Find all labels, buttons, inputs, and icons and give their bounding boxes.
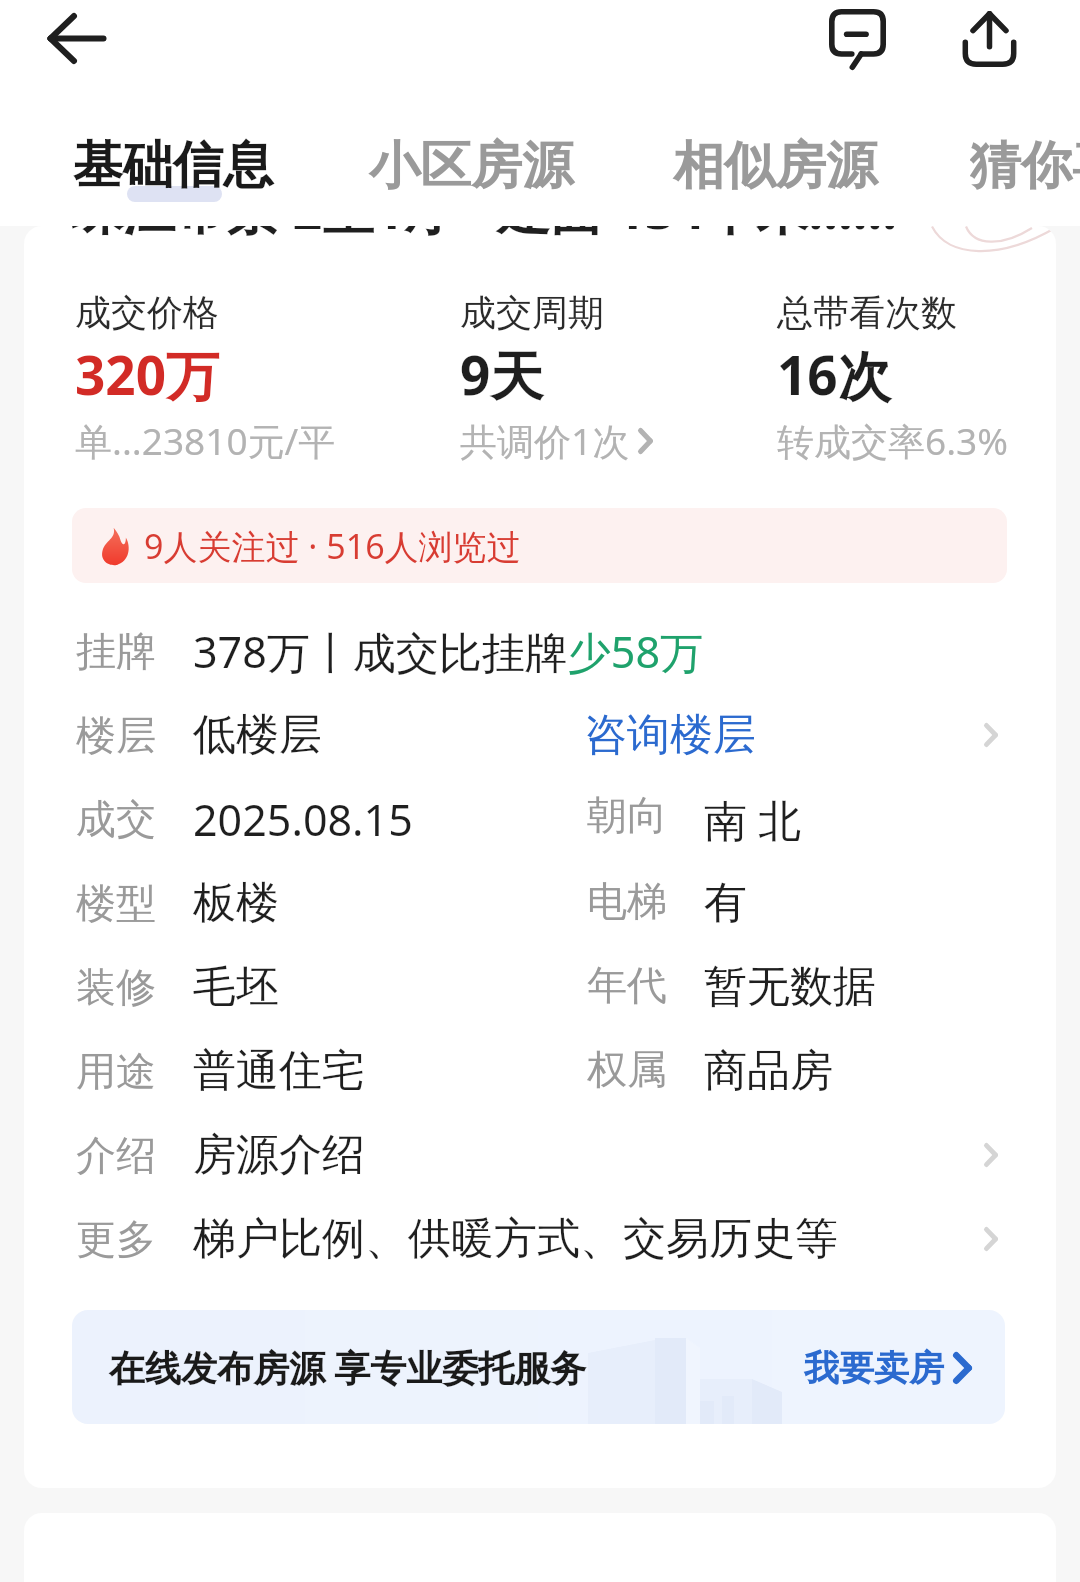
button[interactable]: 猜你喜欢 [970, 134, 1080, 198]
staticText: 用途 [76, 1046, 156, 1096]
staticText: 楼层 [76, 710, 156, 760]
staticText: 年代 [587, 960, 667, 1010]
staticText: 共调价1次 [460, 415, 630, 466]
staticText: 介绍 [76, 1130, 156, 1180]
staticText: 权属 [587, 1044, 667, 1094]
staticText: 小区房源 [369, 134, 573, 198]
staticText: 梯户比例、供暖方式、交易历史等 [193, 1212, 838, 1266]
staticText: 成交价格 [75, 290, 219, 335]
staticText: 南 北 [704, 790, 802, 849]
staticText: 成交周期 [460, 290, 604, 335]
staticText: 楼型 [76, 878, 156, 928]
staticText: 378万丨成交比挂牌少58万 [193, 622, 703, 681]
staticText: 9天 [460, 338, 544, 410]
staticText: 珠江帝景 2室1厅 · 建面 134平米…… [71, 226, 898, 244]
button[interactable]: 小区房源 [369, 134, 573, 198]
staticText: 房源介绍 [193, 1128, 365, 1182]
staticText: 商品房 [704, 1044, 833, 1098]
staticText: 总带看次数 [777, 290, 957, 335]
staticText: 单...23810元/平 [75, 415, 336, 466]
button[interactable]: 在线发布房源 享专业委托服务 [72, 1310, 1005, 1424]
staticText: 低楼层 [193, 708, 322, 762]
staticText: 在线发布房源 享专业委托服务 [109, 1343, 587, 1392]
staticText: 基础信息 [73, 134, 273, 197]
staticText: 暂无数据 [704, 960, 876, 1014]
staticText: 16次 [777, 338, 891, 410]
staticText: 猜你喜欢 [970, 134, 1080, 198]
staticText: 装修 [76, 962, 156, 1012]
staticText: 电梯 [587, 876, 667, 926]
button[interactable]: Share [962, 11, 1017, 67]
staticText: 2025.08.15 [193, 790, 413, 849]
button[interactable]: 相似房源 [673, 134, 877, 198]
staticText: 咨询楼层 [584, 708, 756, 762]
staticText: 9人关注过 · 516人浏览过 [144, 523, 521, 569]
staticText: 成交 [76, 794, 156, 844]
staticText: 挂牌 [76, 626, 156, 676]
button[interactable]: 基础信息 [73, 134, 273, 197]
button[interactable]: 9人关注过 · 516人浏览过 [72, 508, 1007, 583]
staticText: 毛坯 [193, 960, 279, 1014]
button[interactable]: Back [47, 13, 106, 64]
staticText: 普通住宅 [193, 1044, 365, 1098]
staticText: 相似房源 [673, 134, 877, 198]
staticText: 转成交率6.3% [777, 415, 1008, 466]
staticText: 我要卖房 [804, 1346, 944, 1390]
staticText: 板楼 [193, 876, 279, 930]
staticText: 朝向 [587, 790, 667, 840]
staticText: 320万 [75, 338, 219, 410]
button[interactable]: Feedback [829, 9, 886, 69]
staticText: 更多 [76, 1214, 156, 1264]
staticText: 有 [704, 876, 747, 930]
